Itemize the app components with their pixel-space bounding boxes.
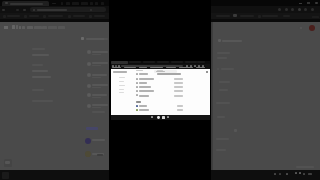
button[interactable]: Active tab xyxy=(2,1,49,7)
button[interactable]: Close xyxy=(313,1,320,5)
button[interactable]: Account xyxy=(309,25,315,31)
button[interactable]: Back xyxy=(1,7,6,11)
button[interactable]: Apps xyxy=(298,26,303,31)
button[interactable]: Forward xyxy=(15,7,20,11)
button[interactable]: Minimize xyxy=(297,1,304,5)
button[interactable]: New tab xyxy=(52,2,56,5)
button[interactable]: Reload xyxy=(22,7,27,11)
button[interactable]: Menu xyxy=(4,25,10,31)
button[interactable]: Address bar xyxy=(30,7,106,12)
button[interactable]: Maximize xyxy=(305,1,312,5)
